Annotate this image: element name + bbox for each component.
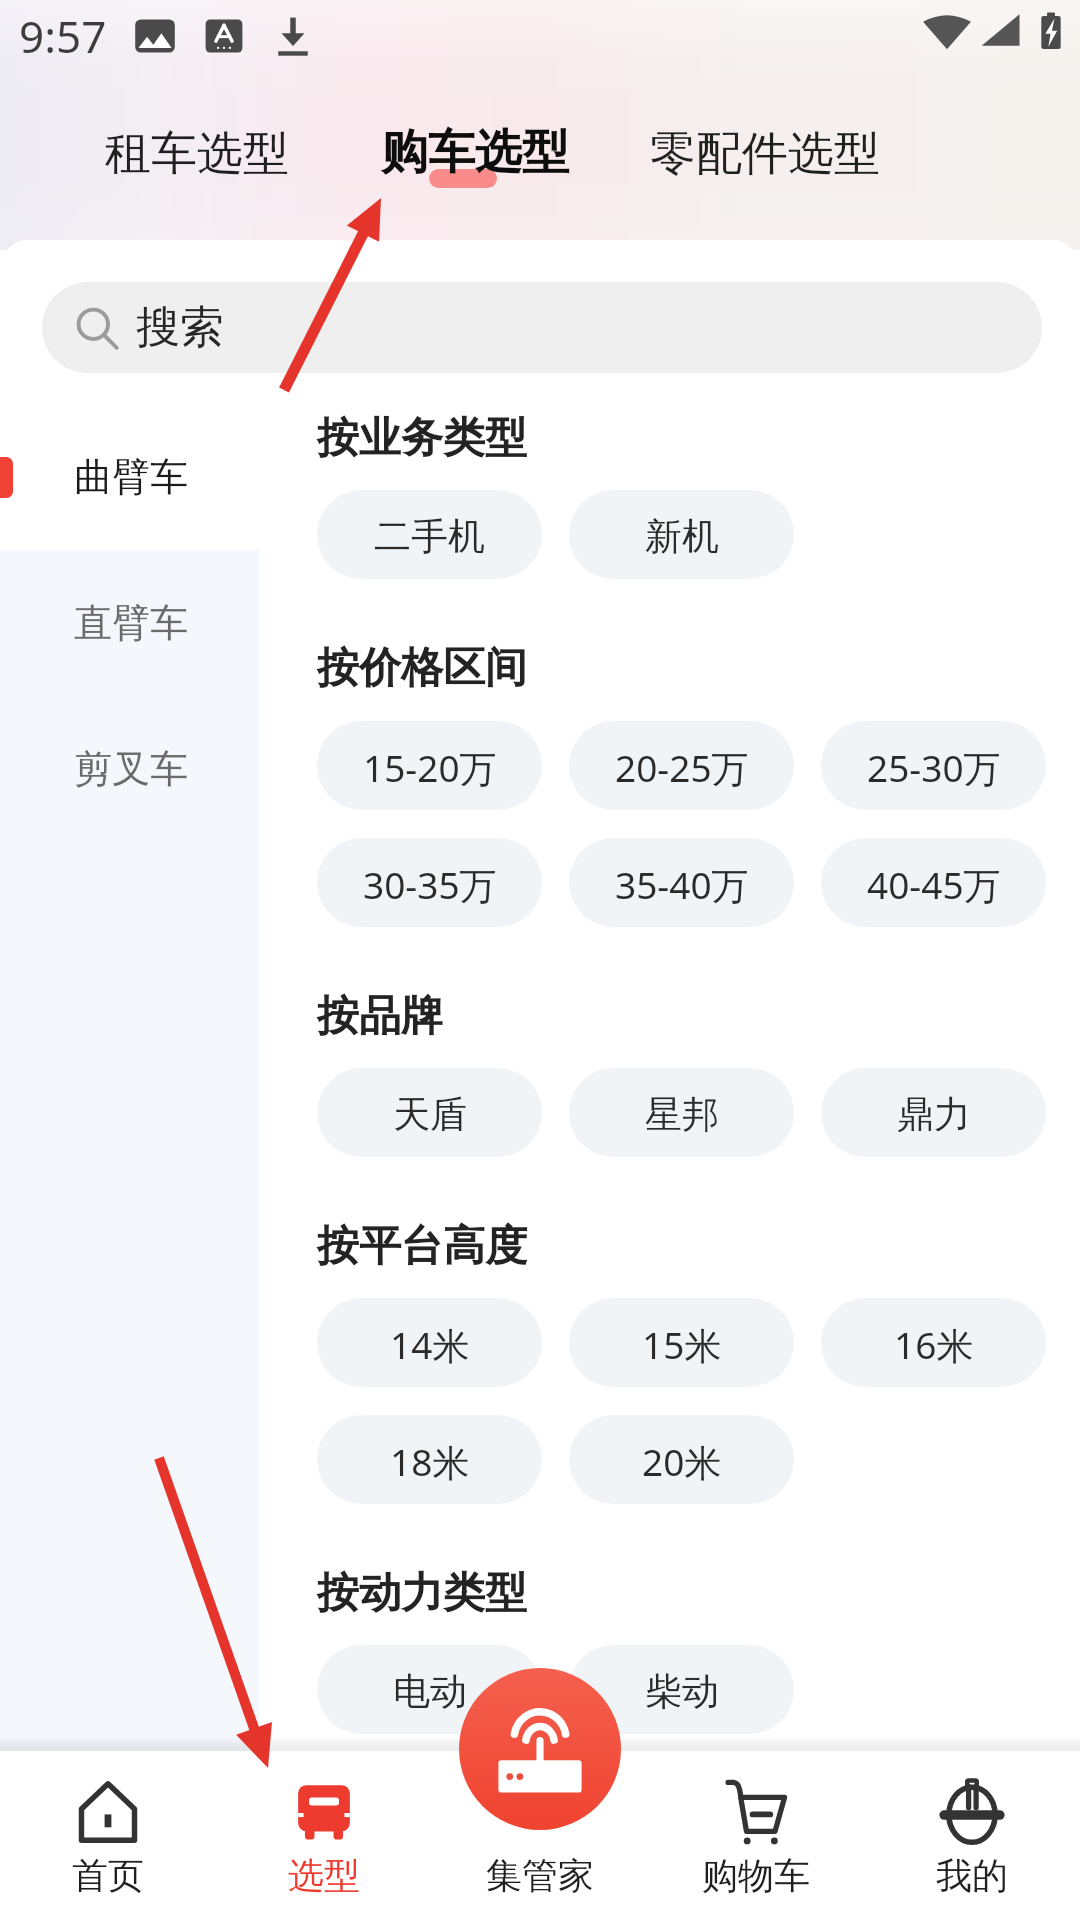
staticText: 新机	[645, 513, 719, 560]
staticText: 我的	[936, 1853, 1008, 1898]
staticText: 柴动	[645, 1668, 719, 1715]
staticText: 按价格区间	[317, 642, 527, 695]
staticText: 20-25万	[615, 742, 749, 793]
button[interactable]: 18米	[317, 1415, 542, 1504]
button[interactable]: 零配件选型	[626, 113, 904, 195]
button[interactable]: 二手机	[317, 490, 542, 579]
staticText: 搜索	[136, 300, 224, 355]
staticText: 电动	[393, 1668, 467, 1715]
button[interactable]: 35-40万	[569, 838, 794, 927]
staticText: 9:57	[19, 6, 107, 66]
button[interactable]: 25-30万	[821, 721, 1046, 810]
button[interactable]: 购物车	[648, 1751, 864, 1920]
staticText: 40-45万	[867, 859, 1001, 910]
staticText: 零配件选型	[650, 125, 880, 183]
button[interactable]: 40-45万	[821, 838, 1046, 927]
button[interactable]: 集管家	[432, 1751, 648, 1920]
button[interactable]: 剪叉车	[0, 696, 259, 842]
staticText: 按品牌	[317, 990, 443, 1043]
staticText: 18米	[390, 1436, 470, 1487]
staticText: 按动力类型	[317, 1567, 527, 1620]
staticText: 天盾	[393, 1091, 467, 1138]
staticText: 剪叉车	[74, 745, 188, 793]
staticText: 15米	[642, 1319, 722, 1370]
staticText: 选型	[288, 1853, 360, 1898]
staticText: 14米	[390, 1319, 470, 1370]
button[interactable]: 电动	[317, 1645, 542, 1734]
staticText: 30-35万	[363, 859, 497, 910]
button[interactable]: 租车选型	[81, 113, 313, 195]
button[interactable]: 星邦	[569, 1068, 794, 1157]
button[interactable]: 柴动	[569, 1645, 794, 1734]
button[interactable]: 集管家	[459, 1668, 621, 1830]
button[interactable]: 16米	[821, 1298, 1046, 1387]
button[interactable]: 14米	[317, 1298, 542, 1387]
button[interactable]: 首页	[0, 1751, 216, 1920]
staticText: 购车选型	[381, 123, 569, 182]
staticText: 35-40万	[615, 859, 749, 910]
button[interactable]: 天盾	[317, 1068, 542, 1157]
staticText: 16米	[894, 1319, 974, 1370]
button[interactable]: 选型	[216, 1751, 432, 1920]
staticText: 首页	[72, 1853, 144, 1898]
button[interactable]: 我的	[864, 1751, 1080, 1920]
staticText: 星邦	[645, 1091, 719, 1138]
button[interactable]: 鼎力	[821, 1068, 1046, 1157]
button[interactable]: 曲臂车	[0, 404, 259, 550]
staticText: 集管家	[486, 1853, 594, 1898]
button[interactable]: 购车选型	[357, 111, 593, 194]
button[interactable]: 新机	[569, 490, 794, 579]
staticText: 租车选型	[105, 125, 289, 183]
staticText: 按平台高度	[317, 1220, 527, 1273]
button[interactable]: 直臂车	[0, 550, 259, 696]
staticText: 15-20万	[363, 742, 497, 793]
staticText: 按业务类型	[317, 412, 527, 465]
staticText: 曲臂车	[74, 453, 188, 501]
staticText: 20米	[642, 1436, 722, 1487]
button[interactable]: 搜索	[42, 282, 1042, 373]
staticText: 购物车	[702, 1853, 810, 1898]
button[interactable]: 20-25万	[569, 721, 794, 810]
staticText: 二手机	[374, 513, 485, 560]
button[interactable]: 15米	[569, 1298, 794, 1387]
button[interactable]: 15-20万	[317, 721, 542, 810]
staticText: 鼎力	[897, 1091, 971, 1138]
button[interactable]: 20米	[569, 1415, 794, 1504]
staticText: 25-30万	[867, 742, 1001, 793]
button[interactable]: 30-35万	[317, 838, 542, 927]
staticText: 直臂车	[74, 599, 188, 647]
